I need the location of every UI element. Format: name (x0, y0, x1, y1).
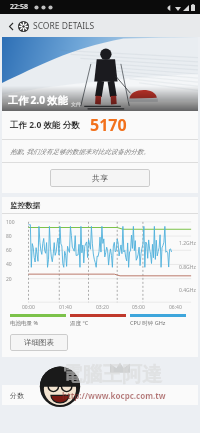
staticText: 工作 2.0 效能 分数 (10, 119, 80, 131)
staticText: 05:00 (132, 304, 145, 311)
staticText: 20 (6, 276, 12, 283)
staticText: 分数 (10, 391, 24, 400)
staticText: 06:40 (169, 304, 182, 311)
staticText: 22:58 (10, 2, 28, 12)
staticText: 00:00 (22, 304, 35, 311)
staticText: 1.2GHz (179, 240, 196, 247)
staticText: 5170 (90, 114, 127, 136)
button[interactable]: 工作 2.0 效能 (2, 37, 198, 111)
button[interactable]: 详细图表 (10, 334, 68, 351)
button[interactable]: 电池电量 % (10, 314, 66, 327)
staticText: 60 (6, 247, 12, 254)
staticText: 共享 (92, 173, 108, 183)
staticText: CPU 时钟 GHz (130, 319, 166, 327)
staticText: 电池电量 % (10, 319, 39, 327)
button[interactable]: CPU 时钟 GHz (130, 314, 186, 327)
staticText: 监控数据 (10, 201, 40, 210)
staticText: 详细图表 (24, 338, 54, 347)
staticText: 03:20 (96, 304, 109, 311)
staticText: 01:40 (59, 304, 72, 311)
button[interactable]: Back (5, 20, 17, 32)
staticText: 80 (6, 233, 12, 240)
staticText: 温度 °C (70, 319, 89, 327)
staticText: 工作 2.0 效能 (8, 93, 68, 107)
staticText: 文件 (71, 101, 81, 107)
staticText: 100 (6, 219, 15, 226)
staticText: 40 (6, 261, 12, 268)
staticText: 電腦王阿達 (62, 362, 162, 387)
staticText: 抱歉, 我们没有足够的数据来对比此设备的分数。 (10, 147, 150, 156)
staticText: http://www.kocpc.com.tw (62, 390, 166, 401)
button[interactable]: 共享 (50, 169, 150, 187)
button[interactable]: Back (0, 14, 200, 37)
staticText: 0.4GHz (179, 287, 196, 294)
staticText: 0.8GHz (179, 264, 196, 271)
button[interactable]: 温度 °C (70, 314, 126, 327)
staticText: SCORE DETAILS (33, 20, 95, 32)
